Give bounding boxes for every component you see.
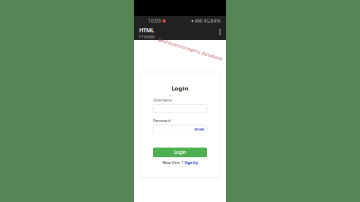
staticText: 10:09 <box>148 18 161 24</box>
staticText: Wifi 4G 84% <box>194 18 220 24</box>
button[interactable]: More options <box>216 26 224 40</box>
staticText: HTML <box>139 26 154 34</box>
button[interactable]: show <box>194 126 204 132</box>
button[interactable]: Login <box>153 148 207 157</box>
staticText: Login <box>171 84 188 92</box>
staticText: Send local storage to database <box>156 46 223 52</box>
button[interactable]: SignUp <box>185 160 198 165</box>
staticText: SignUp <box>185 160 198 165</box>
staticText: Preview <box>139 34 154 40</box>
staticText: New User ? <box>162 160 183 165</box>
staticText: Password <box>153 118 170 123</box>
staticText: show <box>194 126 204 132</box>
staticText: Login <box>174 150 186 155</box>
staticText: Username <box>153 97 172 103</box>
